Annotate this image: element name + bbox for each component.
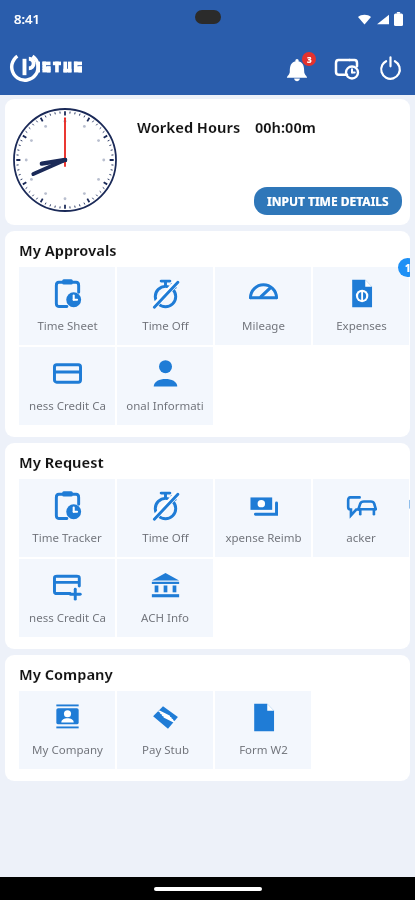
staticText: Time Off [142, 318, 189, 334]
button[interactable]: Time Off [117, 267, 213, 345]
staticText: ACH Info [141, 610, 189, 626]
button[interactable]: onal Informati [117, 347, 213, 425]
button[interactable]: Form W2 [215, 691, 311, 769]
staticText: 3 [307, 54, 312, 65]
button[interactable]: ACH Info [117, 559, 213, 637]
staticText: Time Off [142, 530, 189, 546]
button[interactable]: Logout [375, 52, 405, 82]
staticText: 1 [405, 261, 410, 275]
button[interactable]: Notifications [285, 51, 317, 83]
staticText: My Request [19, 452, 104, 472]
staticText: onal Informati [126, 398, 204, 414]
button[interactable]: Time Off [117, 479, 213, 557]
staticText: acker [346, 530, 376, 546]
staticText: 8:41 [14, 10, 40, 28]
staticText: Pay Stub [142, 742, 189, 758]
button[interactable]: Pay Stub [117, 691, 213, 769]
button[interactable]: ness Credit Ca [19, 559, 115, 637]
button[interactable]: Time Tracker [19, 479, 115, 557]
staticText: Form W2 [239, 742, 288, 758]
staticText: INPUT TIME DETAILS [267, 193, 389, 209]
staticText: Time Sheet [37, 318, 98, 334]
staticText: Time Tracker [32, 530, 102, 546]
staticText: ness Credit Ca [29, 610, 106, 626]
staticText: ness Credit Ca [29, 398, 106, 414]
staticText: My Approvals [19, 240, 117, 260]
staticText: xpense Reimb [225, 530, 302, 546]
button[interactable]: acker [313, 479, 409, 557]
button[interactable]: Time clock [331, 52, 361, 82]
staticText: Mileage [242, 318, 285, 334]
button[interactable]: Mileage [215, 267, 311, 345]
staticText: My Company [32, 742, 103, 758]
staticText: Expenses [336, 318, 387, 334]
button[interactable]: xpense Reimb [215, 479, 311, 557]
button[interactable]: Expenses [313, 267, 409, 345]
staticText: My Company [19, 664, 113, 684]
button[interactable]: INPUT TIME DETAILS [254, 187, 402, 215]
button[interactable]: Time Sheet [19, 267, 115, 345]
staticText: 00h:00m [255, 117, 316, 137]
button[interactable]: My Company [19, 691, 115, 769]
staticText: Worked Hours [137, 117, 241, 137]
button[interactable]: ness Credit Ca [19, 347, 115, 425]
